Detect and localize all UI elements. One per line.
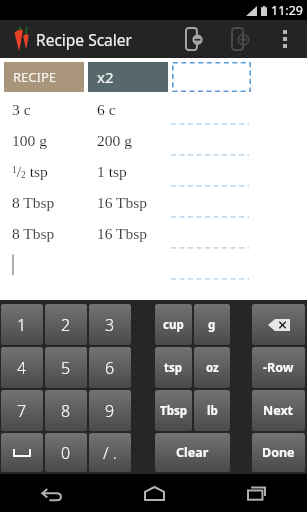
staticText: 5 bbox=[61, 357, 71, 379]
button[interactable]: Home bbox=[103, 474, 205, 512]
button[interactable] bbox=[170, 187, 251, 218]
staticText: 1/2 tsp bbox=[12, 163, 48, 180]
button[interactable]: tsp bbox=[155, 347, 192, 388]
button[interactable]: 16 Tbsp bbox=[85, 187, 170, 218]
staticText: 8 bbox=[61, 400, 71, 422]
staticText: Recipe Scaler bbox=[36, 29, 132, 50]
button[interactable]: lb bbox=[194, 390, 230, 431]
button[interactable]: 0 bbox=[45, 433, 87, 472]
staticText: 9 bbox=[105, 400, 115, 422]
button[interactable]: Recent apps bbox=[205, 474, 307, 512]
staticText: 4 bbox=[17, 357, 27, 379]
staticText: 7 bbox=[17, 400, 27, 422]
button[interactable]: Tbsp bbox=[155, 390, 192, 431]
staticText: lb bbox=[207, 403, 218, 419]
button[interactable]: Done bbox=[252, 433, 305, 472]
button[interactable] bbox=[170, 125, 251, 156]
staticText: 200 g bbox=[97, 132, 132, 149]
button[interactable] bbox=[170, 218, 251, 249]
button[interactable]: 8 bbox=[45, 390, 87, 431]
button[interactable]: 200 g bbox=[85, 125, 170, 156]
button[interactable]: Remove column bbox=[171, 20, 217, 58]
staticText: 0 bbox=[61, 442, 71, 464]
staticText: 6 bbox=[105, 357, 115, 379]
staticText: / . bbox=[103, 442, 117, 464]
staticText: Tbsp bbox=[160, 403, 187, 419]
staticText: 3 bbox=[105, 314, 115, 336]
button[interactable]: x2 bbox=[88, 62, 168, 92]
staticText: 3 c bbox=[12, 101, 31, 118]
button[interactable]: 9 bbox=[89, 390, 131, 431]
staticText: -Row bbox=[263, 359, 294, 376]
button[interactable]: 2 bbox=[45, 304, 87, 345]
button[interactable]: g bbox=[194, 304, 230, 345]
button[interactable]: 6 c bbox=[85, 94, 170, 125]
button[interactable]: 1 tsp bbox=[85, 156, 170, 187]
button[interactable]: Back bbox=[0, 474, 103, 512]
button[interactable]: oz bbox=[194, 347, 230, 388]
staticText: 8 Tbsp bbox=[12, 194, 55, 211]
staticText: 1 bbox=[17, 314, 27, 336]
button[interactable]: Next bbox=[252, 390, 305, 431]
button[interactable]: 100 g bbox=[0, 125, 85, 156]
staticText: 100 g bbox=[12, 132, 47, 149]
button[interactable]: Add column bbox=[217, 20, 263, 58]
button[interactable]: 4 bbox=[1, 347, 43, 388]
button[interactable] bbox=[0, 249, 85, 280]
button[interactable] bbox=[170, 94, 251, 125]
button[interactable]: 7 bbox=[1, 390, 43, 431]
staticText: oz bbox=[206, 360, 219, 376]
button[interactable]: 3 bbox=[89, 304, 131, 345]
button[interactable]: Clear bbox=[155, 433, 230, 472]
staticText: 16 Tbsp bbox=[97, 194, 148, 211]
staticText: 6 c bbox=[97, 101, 116, 118]
staticText: 1 tsp bbox=[97, 163, 127, 180]
button[interactable]: 1 bbox=[1, 304, 43, 345]
staticText: 2 bbox=[61, 314, 71, 336]
staticText: Next bbox=[263, 402, 294, 419]
staticText: 8 Tbsp bbox=[12, 225, 55, 242]
staticText: 16 Tbsp bbox=[97, 225, 148, 242]
button[interactable]: More options bbox=[263, 20, 307, 58]
staticText: x2 bbox=[97, 67, 114, 87]
button[interactable] bbox=[170, 156, 251, 187]
button[interactable]: 6 bbox=[89, 347, 131, 388]
button[interactable]: -Row bbox=[252, 347, 305, 388]
button[interactable]: 3 c bbox=[0, 94, 85, 125]
button[interactable]: 8 Tbsp bbox=[0, 218, 85, 249]
button[interactable]: RECIPE bbox=[4, 62, 84, 92]
button[interactable]: 8 Tbsp bbox=[0, 187, 85, 218]
button[interactable]: / . bbox=[89, 433, 131, 472]
button[interactable] bbox=[170, 249, 251, 280]
button[interactable]: Space bbox=[1, 433, 43, 472]
staticText: 11:29 bbox=[271, 2, 303, 19]
staticText: Clear bbox=[176, 444, 209, 461]
staticText: RECIPE bbox=[13, 68, 57, 86]
staticText: g bbox=[208, 317, 216, 333]
button[interactable] bbox=[172, 62, 251, 92]
staticText: Done bbox=[262, 444, 295, 461]
staticText: cup bbox=[163, 317, 184, 333]
button[interactable]: Backspace bbox=[252, 304, 305, 345]
button[interactable]: 16 Tbsp bbox=[85, 218, 170, 249]
button[interactable]: 1/2 tsp bbox=[0, 156, 85, 187]
button[interactable]: cup bbox=[155, 304, 192, 345]
button[interactable]: 5 bbox=[45, 347, 87, 388]
staticText: tsp bbox=[164, 360, 183, 376]
